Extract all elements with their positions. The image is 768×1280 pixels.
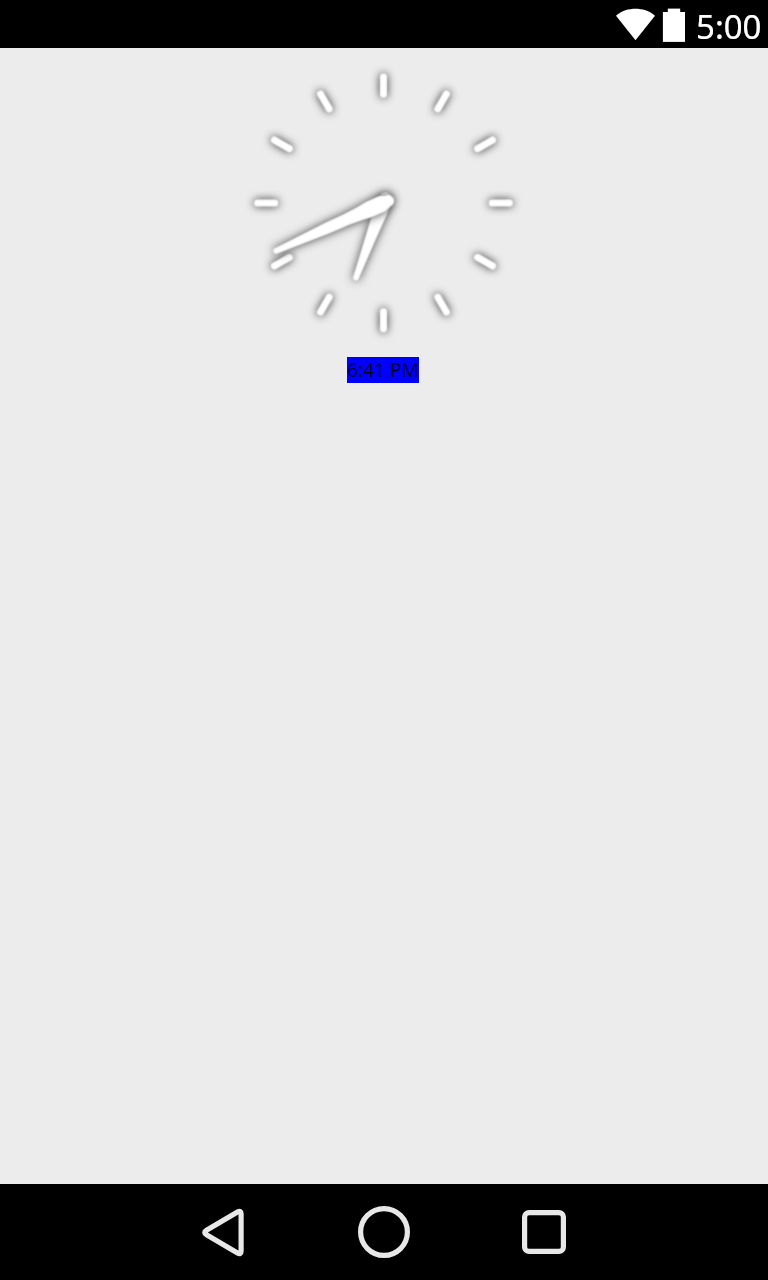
- button[interactable]: Home: [324, 1184, 444, 1280]
- button[interactable]: Recent apps: [484, 1184, 604, 1280]
- staticText: 6:41 PM: [347, 357, 419, 383]
- button[interactable]: Back: [162, 1184, 282, 1280]
- staticText: 5:00: [696, 4, 762, 49]
